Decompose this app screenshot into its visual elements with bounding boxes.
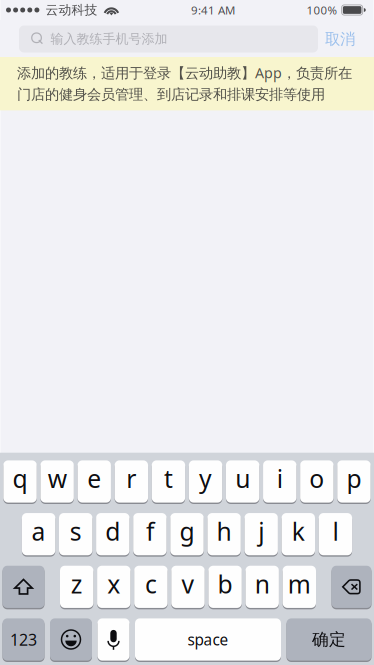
staticText: 门店的健身会员管理、到店记录和排课安排等使用 bbox=[17, 85, 325, 103]
staticText: o bbox=[309, 462, 324, 495]
button[interactable]: 123 bbox=[2, 618, 44, 661]
button[interactable]: f bbox=[133, 513, 167, 556]
button[interactable]: c bbox=[134, 565, 168, 608]
staticText: l bbox=[332, 514, 338, 548]
button[interactable]: Emoji bbox=[50, 618, 92, 661]
staticText: s bbox=[70, 514, 82, 548]
staticText: i bbox=[277, 462, 283, 495]
staticText: m bbox=[288, 567, 311, 601]
button[interactable]: t bbox=[152, 460, 185, 503]
staticText: h bbox=[217, 514, 232, 548]
button[interactable]: z bbox=[60, 565, 93, 608]
staticText: k bbox=[292, 514, 305, 548]
staticText: y bbox=[199, 462, 212, 495]
staticText: u bbox=[235, 462, 250, 495]
button[interactable]: j bbox=[244, 513, 278, 556]
button[interactable]: Delete bbox=[331, 565, 371, 608]
staticText: v bbox=[181, 567, 194, 601]
button[interactable]: d bbox=[96, 513, 129, 556]
staticText: 输入教练手机号添加 bbox=[50, 31, 167, 47]
staticText: f bbox=[146, 514, 154, 548]
staticText: j bbox=[258, 514, 264, 548]
staticText: space bbox=[187, 629, 228, 650]
staticText: 9:41 AM bbox=[191, 2, 235, 18]
button[interactable]: i bbox=[263, 460, 296, 503]
staticText: 100% bbox=[306, 2, 337, 18]
staticText: e bbox=[87, 462, 101, 495]
button[interactable]: x bbox=[97, 565, 130, 608]
button[interactable]: n bbox=[245, 565, 279, 608]
staticText: 添加的教练，适用于登录【云动助教】App，负责所在 bbox=[17, 63, 352, 82]
button[interactable]: g bbox=[170, 513, 204, 556]
staticText: p bbox=[346, 462, 361, 495]
button[interactable]: r bbox=[115, 460, 148, 503]
staticText: t bbox=[164, 462, 173, 495]
button[interactable]: h bbox=[207, 513, 241, 556]
button[interactable]: l bbox=[319, 513, 352, 556]
staticText: z bbox=[71, 567, 83, 601]
button[interactable]: y bbox=[189, 460, 222, 503]
button[interactable]: s bbox=[59, 513, 92, 556]
button[interactable]: 取消 bbox=[318, 23, 362, 55]
button[interactable]: e bbox=[78, 460, 111, 503]
staticText: w bbox=[48, 462, 67, 495]
button[interactable]: a bbox=[22, 513, 55, 556]
staticText: c bbox=[145, 567, 157, 601]
staticText: a bbox=[32, 514, 46, 548]
staticText: d bbox=[105, 514, 120, 548]
button[interactable]: v bbox=[171, 565, 205, 608]
button[interactable]: b bbox=[208, 565, 242, 608]
button[interactable]: q bbox=[3, 460, 37, 503]
staticText: 取消 bbox=[325, 29, 355, 49]
staticText: 云动科技 bbox=[45, 2, 97, 18]
button[interactable]: k bbox=[282, 513, 315, 556]
staticText: 确定 bbox=[312, 629, 346, 650]
button[interactable]: 确定 bbox=[286, 618, 371, 661]
staticText: n bbox=[255, 567, 270, 601]
button[interactable]: space bbox=[135, 618, 281, 661]
staticText: q bbox=[13, 462, 28, 495]
button[interactable]: w bbox=[40, 460, 74, 503]
button[interactable]: Shift bbox=[2, 565, 44, 608]
staticText: b bbox=[218, 567, 233, 601]
staticText: 123 bbox=[10, 629, 37, 650]
button[interactable]: p bbox=[337, 460, 371, 503]
button[interactable]: m bbox=[283, 565, 316, 608]
staticText: g bbox=[179, 514, 194, 548]
button[interactable]: u bbox=[226, 460, 259, 503]
button[interactable]: Dictation bbox=[97, 618, 129, 661]
staticText: x bbox=[107, 567, 120, 601]
button[interactable]: o bbox=[300, 460, 334, 503]
staticText: r bbox=[126, 462, 136, 495]
